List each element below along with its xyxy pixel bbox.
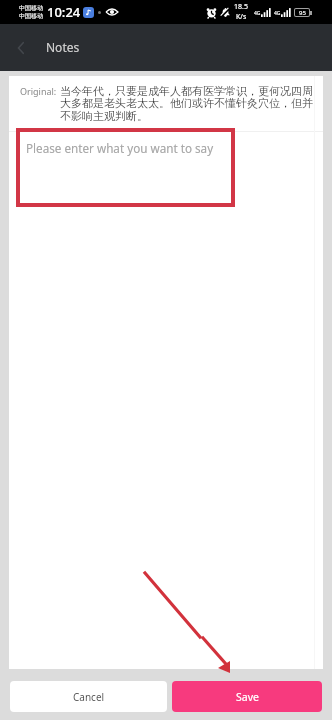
staticText: 10:24 [47,3,81,21]
staticText: 中国移动 [19,12,43,20]
staticText: 中国移动 [19,4,43,12]
staticText: 4G [274,10,281,17]
staticText: Cancel [73,690,105,704]
staticText: 当今年代，只要是成年人都有医学常识，更何况四周大多都是老头老太太。他们或许不懂针… [60,84,314,124]
button[interactable]: Cancel [10,681,167,712]
staticText: Notes [46,39,80,55]
staticText: 95 [299,9,306,16]
button[interactable]: Save [172,681,322,712]
staticText: Save [236,690,259,704]
staticText: Original: [20,85,57,97]
button[interactable]: Please enter what you want to say [16,128,235,207]
staticText: K/s [236,12,247,22]
staticText: 18.5 [234,2,248,12]
staticText: 4G [254,10,261,17]
staticText: Please enter what you want to say [26,140,214,156]
